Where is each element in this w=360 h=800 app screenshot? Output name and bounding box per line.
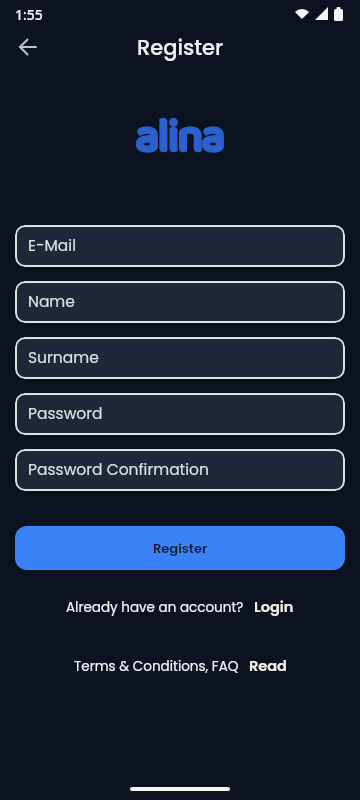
staticText: E-Mail	[28, 235, 76, 257]
button[interactable]	[16, 35, 40, 59]
button[interactable]: Password	[15, 393, 345, 435]
button[interactable]: E-Mail	[15, 225, 345, 267]
staticText: Name	[28, 291, 75, 313]
staticText: Register	[153, 539, 208, 557]
staticText: alina	[136, 100, 224, 174]
staticText: Already have an account?	[66, 598, 244, 617]
button[interactable]: Register	[15, 526, 345, 570]
button[interactable]: Read	[249, 656, 287, 676]
button[interactable]: Surname	[15, 337, 345, 379]
button[interactable]: Name	[15, 281, 345, 323]
staticText: Password Confirmation	[28, 459, 209, 481]
staticText: Password	[28, 403, 103, 425]
button[interactable]: Login	[254, 597, 294, 617]
staticText: Terms & Conditions, FAQ	[74, 657, 239, 676]
staticText: Register	[137, 33, 224, 62]
staticText: Surname	[28, 347, 99, 369]
staticText: alina	[136, 100, 224, 174]
staticText: Read	[249, 656, 287, 676]
staticText: 1:55	[15, 5, 43, 24]
button[interactable]: Password Confirmation	[15, 449, 345, 491]
staticText: Login	[254, 597, 294, 617]
